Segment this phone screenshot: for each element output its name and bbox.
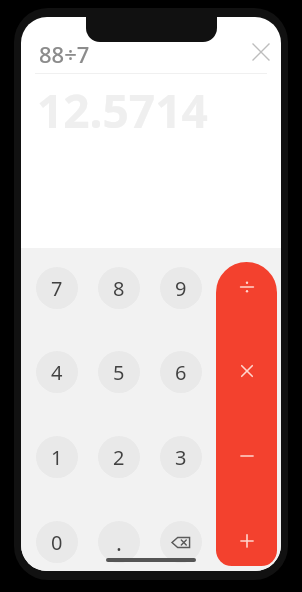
- staticText: 6: [175, 359, 187, 386]
- button[interactable]: 8: [98, 267, 140, 309]
- staticText: 4: [51, 359, 63, 386]
- staticText: 5: [113, 359, 125, 386]
- staticText: 8: [113, 275, 125, 302]
- staticText: 1: [51, 444, 63, 471]
- staticText: 0: [51, 529, 63, 556]
- button[interactable]: Subtract: [216, 431, 277, 481]
- staticText: 2: [113, 444, 125, 471]
- button[interactable]: Backspace: [160, 521, 202, 563]
- staticText: 7: [51, 275, 63, 302]
- button[interactable]: 1: [36, 436, 78, 478]
- button[interactable]: Divide: [216, 262, 277, 312]
- staticText: 88÷7: [39, 39, 90, 69]
- button[interactable]: Add: [216, 516, 277, 566]
- button[interactable]: 88÷7: [39, 35, 189, 73]
- staticText: 3: [175, 444, 187, 471]
- button[interactable]: 3: [160, 436, 202, 478]
- staticText: 12.5714: [37, 79, 208, 142]
- staticText: 9: [175, 275, 187, 302]
- button[interactable]: 7: [36, 267, 78, 309]
- button[interactable]: Multiply: [216, 346, 277, 396]
- button[interactable]: 6: [160, 351, 202, 393]
- button[interactable]: 0: [36, 521, 78, 563]
- button[interactable]: Close: [240, 31, 281, 73]
- button[interactable]: 9: [160, 267, 202, 309]
- button[interactable]: 4: [36, 351, 78, 393]
- button[interactable]: .: [98, 521, 140, 563]
- button[interactable]: 5: [98, 351, 140, 393]
- button[interactable]: 2: [98, 436, 140, 478]
- staticText: .: [116, 527, 122, 557]
